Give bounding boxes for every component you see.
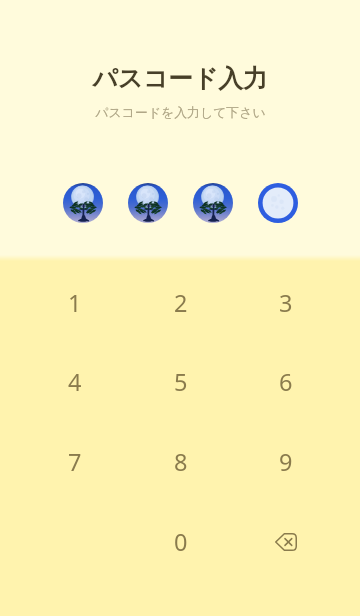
- button[interactable]: Delete: [251, 522, 321, 562]
- staticText: 4: [68, 366, 82, 398]
- staticText: パスコードを入力して下さい: [95, 105, 266, 121]
- staticText: 5: [174, 366, 188, 398]
- button[interactable]: 3: [251, 283, 321, 323]
- staticText: 9: [279, 446, 293, 478]
- staticText: 2: [174, 287, 188, 319]
- staticText: 0: [174, 526, 188, 558]
- button[interactable]: 1: [40, 283, 110, 323]
- staticText: 7: [68, 446, 82, 478]
- button[interactable]: 0: [146, 522, 216, 562]
- button[interactable]: 6: [251, 362, 321, 402]
- staticText: パスコード入力: [92, 63, 268, 94]
- button[interactable]: 4: [40, 362, 110, 402]
- staticText: 6: [279, 366, 293, 398]
- button[interactable]: 5: [146, 362, 216, 402]
- staticText: 8: [174, 446, 188, 478]
- staticText: 1: [68, 287, 82, 319]
- button[interactable]: 7: [40, 442, 110, 482]
- staticText: 3: [279, 287, 293, 319]
- button[interactable]: 9: [251, 442, 321, 482]
- button[interactable]: 8: [146, 442, 216, 482]
- button[interactable]: 2: [146, 283, 216, 323]
